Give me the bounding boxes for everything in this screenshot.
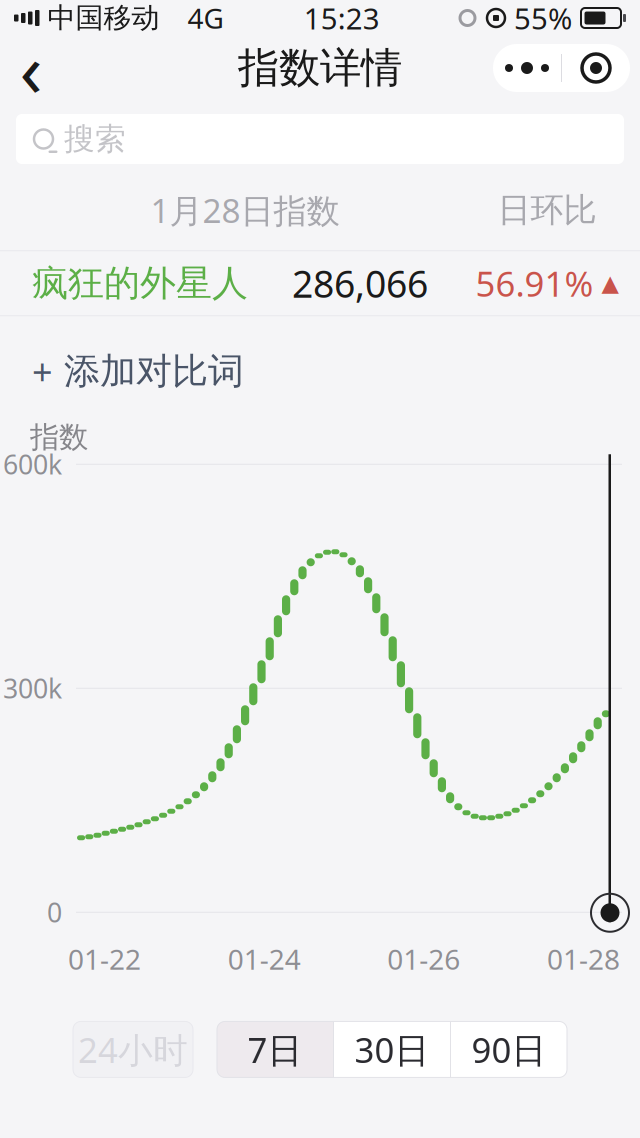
staticText: 01-22 bbox=[68, 940, 141, 977]
staticText: 0 bbox=[47, 895, 62, 930]
staticText: + bbox=[32, 347, 53, 395]
staticText: 286,066 bbox=[292, 258, 428, 308]
button[interactable]: Back bbox=[0, 36, 62, 100]
staticText: 添加对比词 bbox=[64, 349, 244, 393]
button[interactable]: Close mini program bbox=[562, 44, 630, 92]
staticText: 日环比 bbox=[497, 190, 596, 231]
staticText: 01-28 bbox=[547, 940, 620, 977]
staticText: 15:23 bbox=[304, 0, 380, 37]
button[interactable]: 搜索 bbox=[16, 114, 624, 164]
button[interactable]: 7日 bbox=[217, 1021, 333, 1077]
button[interactable]: 90日 bbox=[451, 1021, 567, 1077]
staticText: 指数详情 bbox=[238, 43, 402, 93]
staticText: 中国移动 bbox=[39, 1, 159, 35]
staticText: 疯狂的外星人 bbox=[32, 261, 248, 305]
button[interactable]: More options bbox=[493, 44, 561, 92]
staticText: 01-24 bbox=[228, 940, 301, 977]
staticText: 24小时 bbox=[78, 1026, 188, 1072]
staticText: 300k bbox=[3, 671, 62, 706]
staticText: 4G bbox=[159, 0, 223, 37]
staticText: 30日 bbox=[354, 1026, 429, 1072]
staticText: 56.91% bbox=[475, 260, 593, 306]
staticText: 7日 bbox=[247, 1026, 302, 1072]
staticText: 01-26 bbox=[387, 940, 460, 977]
button[interactable]: + bbox=[0, 342, 268, 400]
staticText: 55% bbox=[514, 0, 572, 37]
staticText: 搜索 bbox=[64, 120, 126, 158]
button[interactable]: 24小时 bbox=[73, 1021, 193, 1077]
staticText: ‹ bbox=[19, 18, 42, 118]
staticText: 指数 bbox=[30, 419, 88, 455]
staticText: 90日 bbox=[471, 1026, 546, 1072]
button[interactable]: 30日 bbox=[334, 1021, 450, 1077]
staticText: 1月28日指数 bbox=[150, 188, 339, 232]
button[interactable]: 疯狂的外星人 bbox=[0, 251, 640, 315]
staticText: ▲ bbox=[601, 270, 618, 296]
staticText: 600k bbox=[3, 447, 62, 482]
